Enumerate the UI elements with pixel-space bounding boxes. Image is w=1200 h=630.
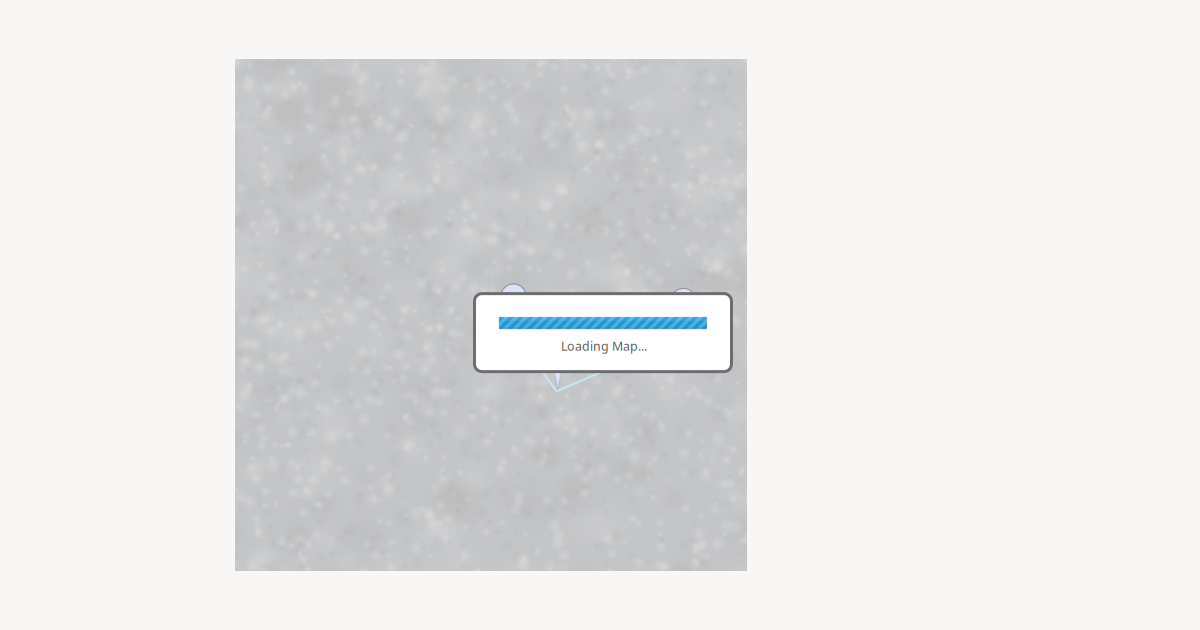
staticText: Loading Map... — [561, 337, 647, 354]
button[interactable]: Destination — [670, 287, 697, 338]
button[interactable]: Start location — [500, 283, 527, 334]
button[interactable]: Waypoint — [549, 344, 566, 390]
